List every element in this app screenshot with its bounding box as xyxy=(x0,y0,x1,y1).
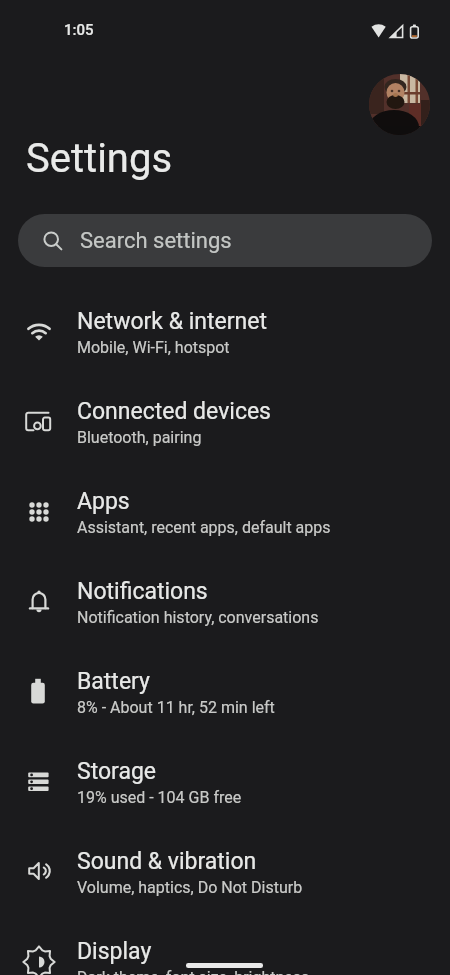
staticText: Bluetooth, pairing xyxy=(77,428,202,447)
staticText: Network & internet xyxy=(77,308,267,335)
staticText: Assistant, recent apps, default apps xyxy=(77,518,331,537)
button[interactable]: Storage xyxy=(0,737,450,827)
button[interactable]: Battery xyxy=(0,647,450,737)
staticText: Dark theme, font size, brightness xyxy=(77,968,310,975)
staticText: 19% used - 104 GB free xyxy=(77,788,242,807)
staticText: Display xyxy=(77,938,152,965)
staticText: Connected devices xyxy=(77,398,271,425)
staticText: Settings xyxy=(26,135,173,182)
staticText: Storage xyxy=(77,758,157,785)
button[interactable]: Connected devices xyxy=(0,377,450,467)
staticText: 8% - About 11 hr, 52 min left xyxy=(77,698,275,717)
staticText: Notifications xyxy=(77,578,208,605)
staticText: Notification history, conversations xyxy=(77,608,319,627)
button[interactable]: Sound & vibration xyxy=(0,827,450,917)
button[interactable]: Apps xyxy=(0,467,450,557)
button[interactable] xyxy=(369,74,430,135)
button[interactable]: Notifications xyxy=(0,557,450,647)
staticText: Apps xyxy=(77,488,130,515)
button[interactable]: Search settings xyxy=(18,214,432,267)
staticText: Sound & vibration xyxy=(77,848,257,875)
button[interactable]: Display xyxy=(0,917,450,975)
staticText: 1:05 xyxy=(64,21,94,39)
staticText: Battery xyxy=(77,668,150,695)
staticText: Search settings xyxy=(80,228,232,254)
staticText: Mobile, Wi-Fi, hotspot xyxy=(77,338,230,357)
staticText: Volume, haptics, Do Not Disturb xyxy=(77,878,303,897)
button[interactable]: Network & internet xyxy=(0,287,450,377)
